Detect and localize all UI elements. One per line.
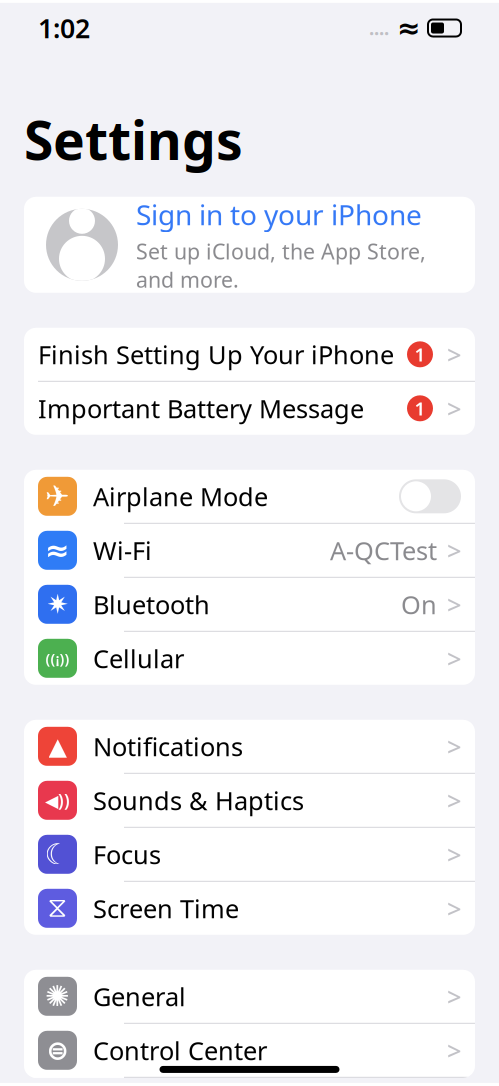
staticText: .... [369,16,389,40]
staticText: > [447,337,461,371]
staticText: > [447,641,461,675]
staticText: > [447,837,461,871]
button[interactable]: Sign in to your iPhone [24,197,475,293]
staticText: ⊜ [46,1035,68,1065]
button[interactable]: ✺ [24,970,475,1023]
button[interactable]: Finish Setting Up Your iPhone [24,328,475,381]
staticText: ≈ [45,534,70,567]
staticText: Control Center [93,1033,267,1067]
staticText: > [447,783,461,817]
staticText: ✺ [45,980,70,1013]
button[interactable]: Important Battery Message [24,382,475,435]
staticText: A-QCTest [330,533,437,567]
staticText: 1:02 [38,10,90,46]
staticText: Important Battery Message [38,391,364,425]
staticText: ((¡)) [45,649,69,668]
button[interactable]: ✷ [24,578,475,631]
staticText: Finish Setting Up Your iPhone [38,337,394,371]
staticText: Sounds & Haptics [93,783,304,817]
staticText: Sign in to your iPhone [136,196,422,233]
button[interactable]: ✈ [24,470,475,523]
staticText: Screen Time [93,891,239,925]
staticText: ☾ [44,838,70,871]
staticText: Wi-Fi [93,533,152,567]
staticText: Settings [24,104,243,175]
staticText: Set up iCloud, the App Store, and more. [136,237,426,294]
button[interactable]: ≈ [24,524,475,577]
staticText: > [447,533,461,567]
button[interactable]: ⊜ [24,1024,475,1077]
button[interactable]: ☾ [24,828,475,881]
staticText: > [447,391,461,425]
button[interactable]: ▲ [24,720,475,773]
staticText: > [447,979,461,1013]
staticText: ≈ [397,12,420,44]
staticText: Bluetooth [93,587,210,621]
staticText: > [447,587,461,621]
staticText: ◀)) [45,789,70,812]
staticText: Airplane Mode [93,479,268,513]
button[interactable]: ((¡)) [24,632,475,685]
staticText: > [447,729,461,763]
staticText: ▲ [48,733,66,760]
staticText: Notifications [93,729,243,763]
staticText: ✈ [45,480,70,513]
staticText: ⧖ [47,895,67,922]
button[interactable]: ⧖ [24,882,475,935]
staticText: Cellular [93,641,184,675]
button[interactable]: ◀)) [24,774,475,827]
staticText: ✷ [46,589,68,619]
staticText: 1 [414,396,425,421]
staticText: General [93,979,186,1013]
staticText: > [447,1033,461,1067]
staticText: 1 [414,342,425,367]
staticText: On [401,587,437,621]
staticText: > [447,891,461,925]
staticText: Focus [93,837,161,871]
